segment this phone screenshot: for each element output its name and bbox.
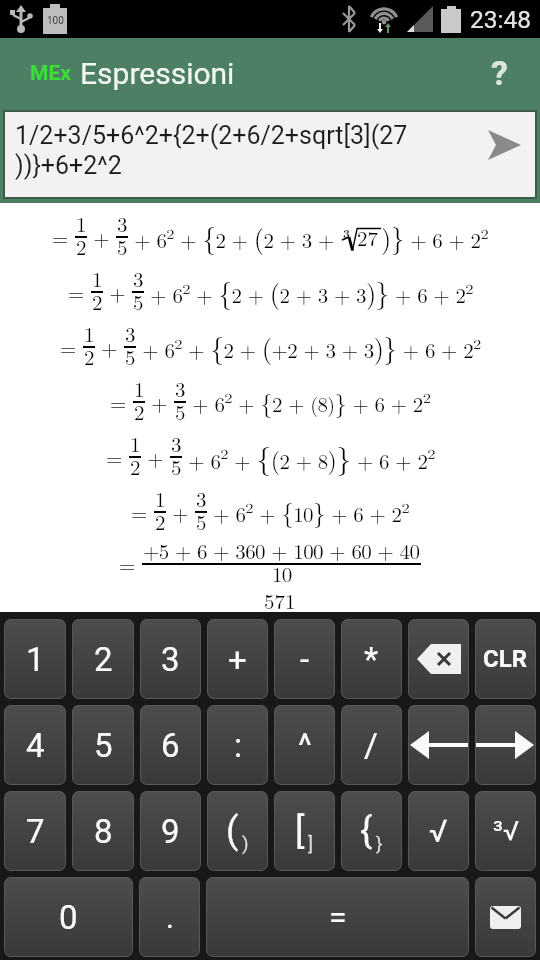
staticText: 9	[161, 812, 180, 851]
button[interactable]: (	[207, 791, 268, 871]
staticText: =	[52, 222, 75, 252]
staticText: +	[141, 442, 170, 472]
staticText: 2	[134, 396, 144, 426]
staticText: + 6² + {(2 + 8)} + 6 + 2²	[182, 435, 435, 478]
staticText: +	[145, 387, 174, 417]
button[interactable]: ?	[487, 53, 512, 93]
staticText: 1	[155, 483, 165, 513]
staticText: + 6² + {2 + (2 + 3 +	[128, 217, 341, 256]
staticText: +	[166, 497, 195, 527]
staticText: 3	[125, 318, 135, 348]
staticText: +	[228, 640, 247, 679]
button[interactable]	[475, 705, 536, 785]
staticText: Espressioni	[80, 56, 235, 91]
button[interactable]: /	[341, 705, 402, 785]
staticText: )	[242, 832, 249, 854]
staticText: + 6² + {2 + (2 + 3 + 3)} + 6 + 2²	[144, 272, 473, 311]
button[interactable]: [	[274, 791, 335, 871]
button[interactable]: 4	[4, 705, 66, 785]
staticText: [	[295, 810, 305, 852]
staticText: 2	[155, 506, 165, 536]
button[interactable]: *	[341, 619, 402, 699]
staticText: 5	[117, 231, 127, 261]
staticText: :	[234, 726, 242, 765]
staticText: 2	[94, 640, 113, 679]
button[interactable]: 9	[140, 791, 201, 871]
staticText: 2	[84, 341, 94, 371]
staticText: =	[131, 497, 154, 527]
staticText: 3	[171, 428, 181, 458]
staticText: =	[60, 332, 83, 362]
button[interactable]: :	[207, 705, 268, 785]
staticText: 1/2+3/5+6^2+{2+(2+6/2+sqrt[3](27 ))}+6+2…	[15, 121, 408, 180]
staticText: 7	[26, 812, 45, 851]
staticText: + 6² + {2 + (8)} + 6 + 2²	[186, 384, 431, 419]
staticText: 1	[76, 208, 86, 238]
button[interactable]: 6	[140, 705, 201, 785]
staticText: .	[166, 900, 174, 935]
staticText: 1	[130, 428, 140, 458]
staticText: 4	[26, 726, 45, 765]
staticText: ]	[308, 832, 314, 854]
staticText: 5	[125, 341, 135, 371]
button[interactable]: {	[341, 791, 402, 871]
button[interactable]	[475, 877, 536, 957]
staticText: CLR	[483, 645, 528, 673]
button[interactable]: 0	[4, 877, 133, 957]
staticText: 6	[161, 726, 180, 765]
button[interactable]: 7	[4, 791, 66, 871]
staticText: =	[110, 387, 133, 417]
staticText: 10	[272, 558, 292, 588]
staticText: ³√	[493, 815, 519, 847]
staticText: {	[360, 810, 373, 852]
staticText: 0	[59, 898, 78, 937]
staticText: 3	[343, 224, 350, 241]
button[interactable]: 3	[140, 619, 201, 699]
staticText: 3	[196, 483, 206, 513]
button[interactable]: .	[139, 877, 200, 957]
button[interactable]: ³√	[475, 791, 536, 871]
staticText: 1	[84, 318, 94, 348]
button[interactable]: 8	[72, 791, 134, 871]
staticText: 27	[357, 222, 378, 252]
staticText: 2	[92, 286, 102, 316]
button[interactable]	[408, 619, 469, 699]
button[interactable]: =	[206, 877, 469, 957]
staticText: =	[119, 549, 142, 579]
staticText: + 6² + {10} + 6 + 2²	[207, 494, 410, 530]
button[interactable]: 5	[72, 705, 134, 785]
staticText: 23:48	[470, 5, 532, 34]
staticText: =	[106, 442, 129, 472]
staticText: )} + 6 + 2²	[381, 217, 489, 256]
staticText: }	[376, 832, 383, 854]
staticText: 5	[175, 396, 185, 426]
staticText: 3	[133, 263, 143, 293]
staticText: (	[226, 810, 239, 852]
staticText: 3	[175, 373, 185, 403]
staticText: 1	[92, 263, 102, 293]
staticText: -	[300, 640, 310, 679]
button[interactable]: CLR	[475, 619, 536, 699]
staticText: *	[364, 640, 379, 679]
staticText: 1	[26, 640, 45, 679]
staticText: 5	[171, 451, 181, 481]
button[interactable]: -	[274, 619, 335, 699]
button[interactable]	[408, 705, 469, 785]
staticText: =	[329, 898, 347, 936]
button[interactable]: 2	[72, 619, 134, 699]
button[interactable]: ^	[274, 705, 335, 785]
button[interactable]: √	[408, 791, 469, 871]
staticText: 2	[130, 451, 140, 481]
button[interactable]	[488, 130, 521, 160]
button[interactable]: 1	[4, 619, 66, 699]
staticText: + 6² + {2 + (+2 + 3 + 3)} + 6 + 2²	[136, 327, 481, 366]
staticText: 2	[76, 231, 86, 261]
staticText: MEx	[30, 61, 71, 86]
staticText: √	[429, 813, 448, 849]
staticText: +	[95, 332, 124, 362]
staticText: 3	[161, 640, 180, 679]
button[interactable]: +	[207, 619, 268, 699]
staticText: 1	[134, 373, 144, 403]
staticText: 5	[133, 286, 143, 316]
staticText: 571	[264, 585, 296, 615]
